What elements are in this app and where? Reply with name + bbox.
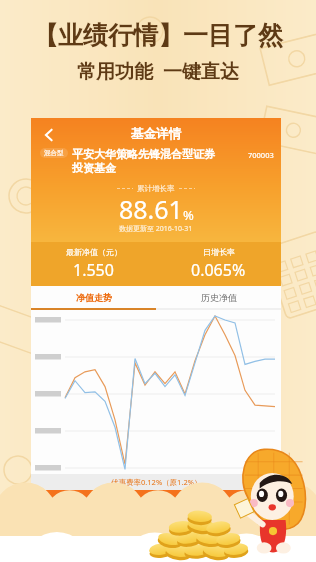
staticText: 优惠费率0.12%（原1.2%） <box>111 477 202 487</box>
staticText: 平安大华策略先锋混合型证券 投资基金 <box>72 147 245 175</box>
staticText: 88.61 <box>119 192 183 226</box>
staticText: 0.065% <box>191 259 246 281</box>
button[interactable]: 历史净值 <box>156 286 281 308</box>
staticText: % <box>183 206 194 224</box>
staticText: 基金详情 <box>131 126 181 142</box>
staticText: 常用功能 一键直达 <box>77 58 239 84</box>
staticText: 累计增长率 <box>137 184 175 193</box>
staticText: 购 买 <box>141 496 172 512</box>
button[interactable]: 净值走势 <box>31 286 156 308</box>
button[interactable]: Back <box>38 124 60 146</box>
staticText: 混合型 <box>44 149 64 157</box>
staticText: 最新净值（元） <box>66 247 122 257</box>
button[interactable]: 购 买 <box>31 490 281 518</box>
staticText: 700003 <box>248 150 274 160</box>
staticText: 净值走势 <box>76 292 112 303</box>
staticText: 【业绩行情】一目了然 <box>33 20 283 51</box>
staticText: 数据更新至 2016-10-31 <box>119 224 193 234</box>
button[interactable]: 最新净值（元） <box>31 247 156 281</box>
staticText: 1.550 <box>73 259 114 281</box>
staticText: 历史净值 <box>201 292 237 303</box>
button[interactable]: 日增长率 <box>156 247 281 281</box>
staticText: 日增长率 <box>203 247 235 257</box>
